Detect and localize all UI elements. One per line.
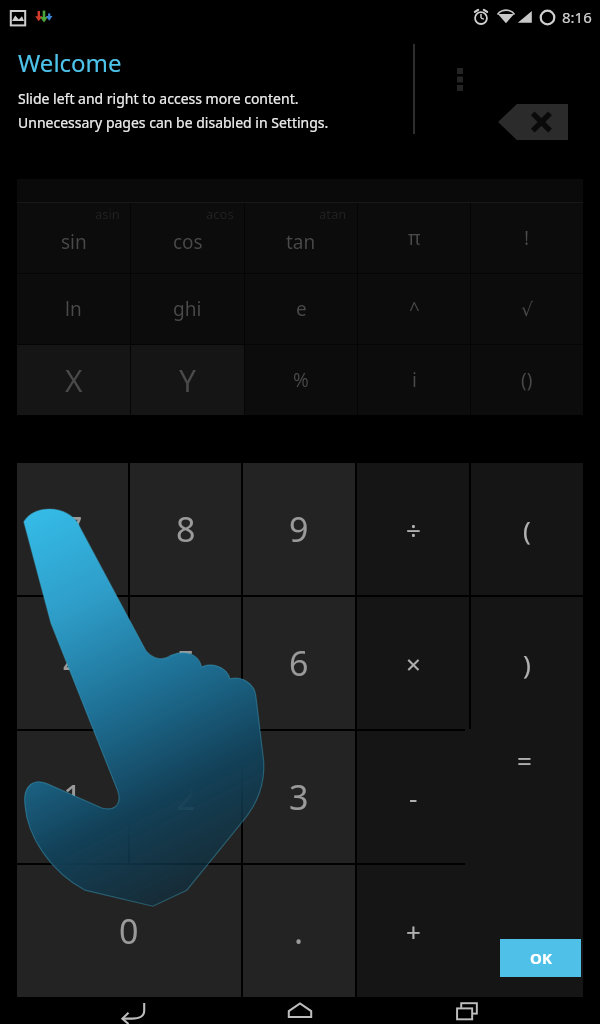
staticText: 8 <box>176 506 196 552</box>
button[interactable]: ln <box>17 274 130 344</box>
staticText: Unnecessary pages can be disabled in Set… <box>18 113 329 132</box>
button[interactable]: Y <box>131 345 244 415</box>
button[interactable]: 8 <box>130 463 241 595</box>
staticText: 5 <box>176 640 196 686</box>
staticText: = <box>517 743 532 778</box>
staticText: 1 <box>63 774 83 820</box>
staticText: e <box>296 296 307 322</box>
button[interactable]: π <box>358 203 470 273</box>
staticText: . <box>294 908 304 954</box>
staticText: ln <box>65 296 82 322</box>
staticText: π <box>408 225 421 251</box>
staticText: 3 <box>289 774 309 820</box>
staticText: Y <box>179 360 196 401</box>
button[interactable]: Backspace <box>498 104 568 140</box>
button[interactable]: Home <box>265 997 335 1024</box>
button[interactable]: ) <box>471 597 583 729</box>
staticText: ^ <box>409 296 420 322</box>
button[interactable]: 9 <box>243 463 355 595</box>
staticText: 0 <box>119 908 139 954</box>
button[interactable]: OK <box>500 939 581 977</box>
button[interactable]: 6 <box>243 597 355 729</box>
button[interactable]: % <box>245 345 357 415</box>
button[interactable]: = <box>465 729 583 997</box>
button[interactable]: ÷ <box>357 463 469 595</box>
button[interactable]: atan <box>245 203 357 273</box>
staticText: atan <box>319 205 347 223</box>
button[interactable]: More options <box>444 60 476 98</box>
staticText: 7 <box>63 506 83 552</box>
staticText: ) <box>523 646 531 681</box>
button[interactable]: 5 <box>130 597 241 729</box>
staticText: 6 <box>289 640 309 686</box>
button[interactable]: 3 <box>243 731 355 863</box>
button[interactable]: - <box>357 731 469 863</box>
staticText: i <box>412 367 417 393</box>
button[interactable]: asin <box>17 203 130 273</box>
staticText: ÷ <box>406 512 421 547</box>
staticText: √ <box>521 298 534 320</box>
staticText: Welcome <box>18 46 122 79</box>
staticText: sin <box>61 229 87 255</box>
staticText: 4 <box>63 640 83 686</box>
button[interactable]: acos <box>131 203 244 273</box>
staticText: - <box>409 780 418 815</box>
button[interactable]: 7 <box>17 463 128 595</box>
button[interactable]: . <box>243 865 355 997</box>
staticText: ghi <box>173 296 202 322</box>
button[interactable]: X <box>17 345 130 415</box>
button[interactable]: + <box>357 865 469 997</box>
staticText: ! <box>524 225 530 251</box>
staticText: OK <box>530 948 552 968</box>
staticText: tan <box>286 229 316 255</box>
button[interactable]: Back <box>98 997 168 1024</box>
staticText: () <box>521 367 533 393</box>
staticText: + <box>406 914 421 949</box>
button[interactable]: e <box>245 274 357 344</box>
staticText: 2 <box>176 774 196 820</box>
staticText: Slide left and right to access more cont… <box>18 89 299 108</box>
staticText: 8:16 <box>562 7 592 27</box>
button[interactable]: × <box>357 597 469 729</box>
button[interactable]: 2 <box>130 731 241 863</box>
button[interactable]: 0 <box>17 865 241 997</box>
staticText: ( <box>523 512 531 547</box>
button[interactable]: Recent apps <box>433 997 503 1024</box>
button[interactable]: () <box>471 345 583 415</box>
button[interactable]: 1 <box>17 731 128 863</box>
button[interactable]: 4 <box>17 597 128 729</box>
staticText: × <box>406 646 421 681</box>
staticText: acos <box>206 205 234 223</box>
button[interactable]: ( <box>471 463 583 595</box>
staticText: asin <box>95 205 120 223</box>
button[interactable]: ghi <box>131 274 244 344</box>
staticText: 9 <box>289 506 309 552</box>
staticText: cos <box>173 229 203 255</box>
staticText: % <box>293 367 309 393</box>
staticText: X <box>65 360 83 401</box>
